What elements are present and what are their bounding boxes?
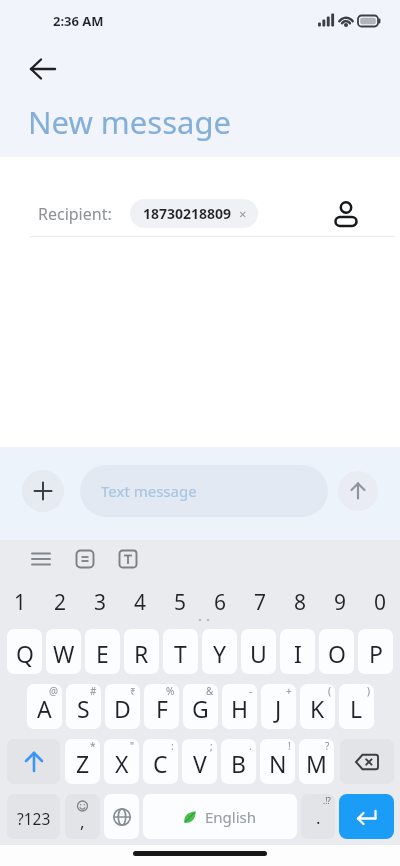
- staticText: +: [286, 684, 292, 698]
- staticText: ?123: [17, 808, 51, 829]
- staticText: V: [193, 748, 207, 779]
- button[interactable]: [26, 544, 56, 574]
- button[interactable]: R: [124, 629, 159, 674]
- staticText: H: [231, 693, 249, 724]
- staticText: &: [206, 684, 214, 698]
- staticText: 7: [254, 588, 267, 616]
- staticText: 0: [374, 588, 387, 616]
- button[interactable]: U: [241, 629, 276, 674]
- button[interactable]: .: [301, 794, 335, 839]
- staticText: 2: [54, 588, 67, 616]
- staticText: M: [306, 748, 327, 779]
- button[interactable]: E: [85, 629, 120, 674]
- staticText: 4: [134, 588, 147, 616]
- button[interactable]: X: [104, 739, 139, 784]
- staticText: U: [250, 638, 267, 669]
- button[interactable]: [338, 471, 378, 511]
- button[interactable]: [7, 739, 60, 784]
- staticText: C: [153, 748, 168, 779]
- staticText: O: [328, 638, 346, 669]
- button[interactable]: S: [66, 684, 101, 729]
- staticText: 18730218809: [143, 204, 232, 223]
- staticText: (: [328, 684, 331, 698]
- staticText: L: [350, 693, 363, 724]
- staticText: Y: [213, 638, 227, 669]
- staticText: New message: [28, 101, 231, 143]
- button[interactable]: V: [182, 739, 217, 784]
- button[interactable]: [339, 794, 394, 839]
- staticText: !: [288, 739, 291, 753]
- staticText: E: [96, 638, 109, 669]
- staticText: ×: [239, 205, 247, 223]
- staticText: 5: [174, 588, 187, 616]
- staticText: G: [192, 693, 209, 724]
- staticText: Q: [16, 638, 34, 669]
- button[interactable]: [104, 794, 139, 839]
- staticText: P: [369, 638, 383, 669]
- button[interactable]: Y: [202, 629, 237, 674]
- button[interactable]: B: [221, 739, 256, 784]
- button[interactable]: ?123: [7, 794, 60, 839]
- button[interactable]: Q: [7, 629, 42, 674]
- button[interactable]: [113, 544, 143, 574]
- staticText: %: [166, 684, 175, 698]
- staticText: English: [205, 807, 257, 827]
- staticText: 6: [214, 588, 227, 616]
- button[interactable]: I: [280, 629, 315, 674]
- button[interactable]: Text message: [80, 465, 328, 517]
- button[interactable]: 18730218809: [143, 199, 247, 228]
- staticText: I: [294, 638, 302, 669]
- staticText: 8: [294, 588, 307, 616]
- staticText: Recipient:: [38, 203, 112, 225]
- staticText: .: [316, 806, 321, 829]
- staticText: #: [90, 684, 97, 698]
- staticText: @: [49, 684, 58, 698]
- button[interactable]: G: [183, 684, 218, 729]
- staticText: ,: [80, 810, 85, 833]
- button[interactable]: P: [358, 629, 393, 674]
- button[interactable]: M: [299, 739, 334, 784]
- staticText: .!?: [323, 795, 331, 806]
- staticText: B: [231, 748, 246, 779]
- button[interactable]: T: [163, 629, 198, 674]
- button[interactable]: W: [46, 629, 81, 674]
- button[interactable]: O: [319, 629, 354, 674]
- staticText: ": [130, 739, 135, 753]
- staticText: ₹: [130, 684, 136, 698]
- staticText: .: [249, 739, 252, 753]
- button[interactable]: F: [144, 684, 179, 729]
- staticText: Z: [76, 748, 90, 779]
- staticText: D: [114, 693, 131, 724]
- staticText: *: [90, 739, 96, 753]
- staticText: K: [310, 693, 325, 724]
- staticText: R: [134, 638, 149, 669]
- staticText: 1: [14, 588, 27, 616]
- staticText: -: [249, 684, 253, 698]
- staticText: :: [171, 739, 174, 753]
- button[interactable]: K: [300, 684, 335, 729]
- button[interactable]: ,: [65, 794, 100, 839]
- button[interactable]: C: [143, 739, 178, 784]
- staticText: 9: [334, 588, 347, 616]
- staticText: S: [77, 693, 90, 724]
- button[interactable]: D: [105, 684, 140, 729]
- staticText: Text message: [101, 481, 197, 501]
- button[interactable]: [22, 470, 64, 512]
- button[interactable]: [340, 739, 394, 784]
- staticText: ): [367, 684, 370, 698]
- button[interactable]: [328, 194, 364, 230]
- button[interactable]: [22, 50, 62, 88]
- staticText: A: [37, 693, 52, 724]
- staticText: ;: [210, 739, 213, 753]
- staticText: W: [53, 638, 75, 669]
- button[interactable]: A: [27, 684, 62, 729]
- staticText: ?: [325, 739, 330, 753]
- button[interactable]: H: [222, 684, 257, 729]
- button[interactable]: [70, 544, 100, 574]
- staticText: 2:36 AM: [53, 12, 104, 30]
- button[interactable]: N: [260, 739, 295, 784]
- button[interactable]: Z: [65, 739, 100, 784]
- button[interactable]: J: [261, 684, 296, 729]
- button[interactable]: L: [339, 684, 374, 729]
- button[interactable]: English: [143, 794, 297, 839]
